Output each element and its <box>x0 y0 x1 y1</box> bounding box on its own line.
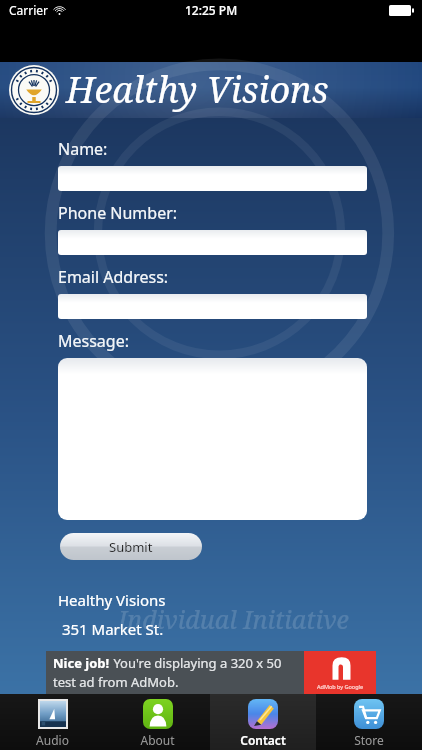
staticText: Submit <box>109 538 153 556</box>
staticText: Carrier <box>9 2 49 18</box>
staticText: About <box>140 732 175 748</box>
button[interactable]: About <box>105 694 210 750</box>
button[interactable] <box>58 166 367 191</box>
staticText: Phone Number: <box>58 202 178 224</box>
staticText: Audio <box>36 732 69 748</box>
staticText: Clinton. TN 37716 <box>58 648 187 668</box>
button[interactable] <box>58 294 367 319</box>
button[interactable] <box>58 358 367 520</box>
staticText: 12:25 PM <box>185 2 238 18</box>
button[interactable]: Contact <box>210 694 316 750</box>
staticText: Email Address: <box>58 266 169 288</box>
button[interactable]: Nice job! <box>46 651 376 694</box>
staticText: 351 Market St. <box>58 619 164 639</box>
button[interactable] <box>58 230 367 255</box>
button[interactable]: Store <box>316 694 422 750</box>
staticText: AdMob by Google <box>317 683 364 690</box>
button[interactable]: Audio <box>0 694 105 750</box>
staticText: Healthy Visions <box>66 65 329 114</box>
staticText: You're displaying a 320 x 50 <box>110 654 282 672</box>
other: About <box>143 699 173 729</box>
staticText: Contact <box>240 732 286 748</box>
button[interactable]: Submit <box>60 533 202 560</box>
other: Audio <box>40 701 66 727</box>
staticText: Nice job! <box>53 654 110 672</box>
staticText: test ad from AdMob. <box>53 673 179 691</box>
staticText: Healthy Visions <box>58 590 166 610</box>
staticText: Name: <box>58 138 108 160</box>
staticText: Store <box>354 732 384 748</box>
staticText: Message: <box>58 330 129 352</box>
staticText: Individual Initiative <box>118 602 349 636</box>
other: Contact <box>248 699 278 729</box>
other: Store <box>354 699 384 729</box>
